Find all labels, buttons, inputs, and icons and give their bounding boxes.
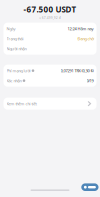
staticText: 0/19: [86, 78, 93, 83]
staticText: 12:24 Hôm nay: [67, 26, 93, 31]
staticText: Ngày: [6, 26, 15, 31]
button[interactable]: Xem thêm chi tiết: [0, 98, 100, 110]
staticText: Người nhận: [6, 46, 26, 51]
staticText: 0,07291 TRX (0,30 $): [60, 68, 93, 73]
staticText: Xác nhận: [6, 78, 21, 83]
staticText: Phí mạng lưới: [6, 68, 30, 73]
button[interactable]: Support chat: [81, 183, 98, 191]
staticText: Xem thêm chi tiết: [6, 101, 36, 106]
staticText: -67.500 USDT: [23, 4, 76, 15]
staticText: Trạng thái: [6, 36, 23, 41]
staticText: ≈ 67.499,92 đ: [39, 16, 61, 20]
staticText: Đang chờ: [77, 36, 93, 41]
